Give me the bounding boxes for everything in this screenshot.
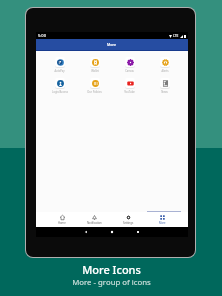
button[interactable]: News — [147, 78, 182, 94]
button[interactable]: Wallet — [77, 57, 112, 73]
other: Home — [110, 230, 114, 234]
button[interactable]: Notification — [78, 212, 111, 227]
staticText: Home — [58, 221, 66, 225]
other: Back — [84, 230, 88, 234]
staticText: Wallet — [91, 69, 99, 73]
staticText: Our Policies — [87, 90, 102, 94]
staticText: YouTube — [124, 90, 135, 94]
button[interactable]: More — [145, 212, 179, 227]
button[interactable]: Settings — [111, 212, 145, 227]
button[interactable]: Home — [45, 212, 78, 227]
staticText: 5:00 — [38, 33, 46, 38]
staticText: Login/Access — [52, 90, 68, 94]
button[interactable]: Our Policies — [77, 78, 112, 94]
button[interactable]: Login/Access — [42, 78, 77, 94]
staticText: AutoPay — [54, 69, 65, 73]
staticText: News — [161, 90, 168, 94]
staticText: More — [107, 42, 117, 47]
button[interactable]: Alerts — [147, 57, 182, 73]
staticText: More — [159, 221, 166, 225]
staticText: LTE — [173, 34, 179, 38]
button[interactable]: Canvas — [112, 57, 147, 73]
staticText: Settings — [123, 221, 134, 225]
staticText: Alerts — [161, 69, 169, 73]
button[interactable]: YouTube — [112, 78, 147, 94]
button[interactable]: AutoPay — [42, 57, 77, 73]
staticText: Notification — [87, 221, 102, 225]
other: Recents — [136, 230, 140, 234]
staticText: Canvas — [125, 69, 134, 73]
staticText: More Icons — [82, 262, 141, 277]
staticText: More - group of icons — [72, 277, 151, 288]
